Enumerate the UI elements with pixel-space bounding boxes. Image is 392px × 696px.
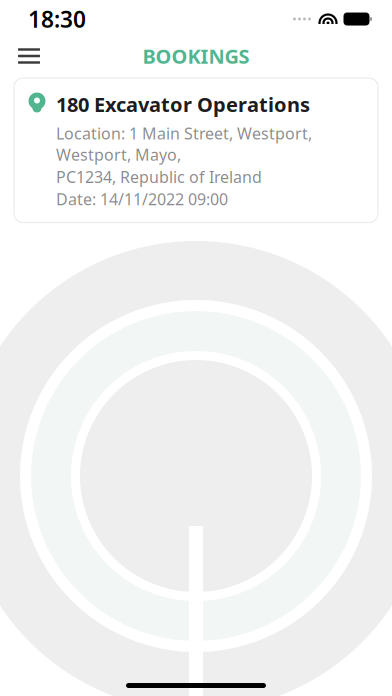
button[interactable]: Menu [6,38,52,74]
staticText: 18:30 [28,4,86,34]
staticText: BOOKINGS [142,43,249,69]
staticText: 180 Excavator Operations [56,91,310,118]
button[interactable]: 180 Excavator Operations [14,78,378,223]
staticText: PC1234, Republic of Ireland [56,166,262,187]
staticText: Date: 14/11/2022 09:00 [56,188,228,209]
staticText: Location: 1 Main Street, Westport, Westp… [56,123,312,165]
